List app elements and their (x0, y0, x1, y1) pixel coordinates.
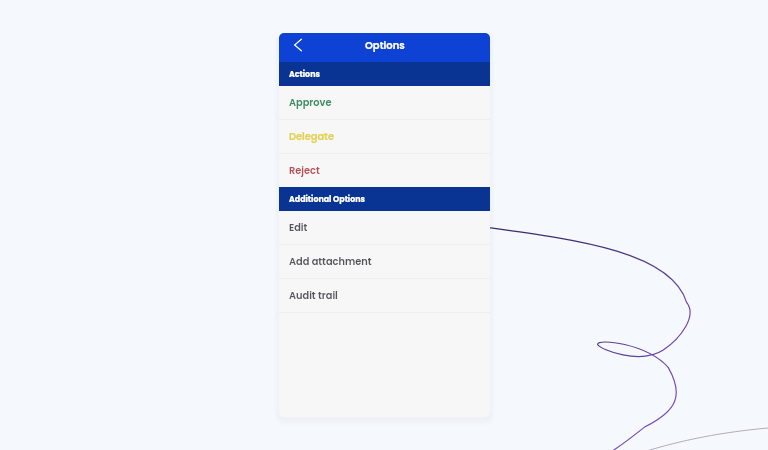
staticText: Audit trail (289, 289, 338, 303)
button[interactable]: Add attachment (279, 245, 490, 278)
button[interactable]: Delegate (279, 120, 490, 153)
button[interactable]: Approve (279, 86, 490, 119)
button[interactable]: Reject (279, 154, 490, 187)
staticText: Add attachment (289, 255, 372, 269)
staticText: Edit (289, 221, 308, 235)
staticText: Approve (289, 96, 332, 110)
staticText: Reject (289, 164, 320, 178)
staticText: Additional Options (289, 194, 365, 205)
button[interactable]: Back (291, 38, 305, 52)
staticText: Actions (289, 69, 320, 80)
staticText: Delegate (289, 130, 334, 144)
button[interactable]: Edit (279, 211, 490, 244)
staticText: Options (365, 38, 405, 52)
button[interactable]: Audit trail (279, 279, 490, 312)
